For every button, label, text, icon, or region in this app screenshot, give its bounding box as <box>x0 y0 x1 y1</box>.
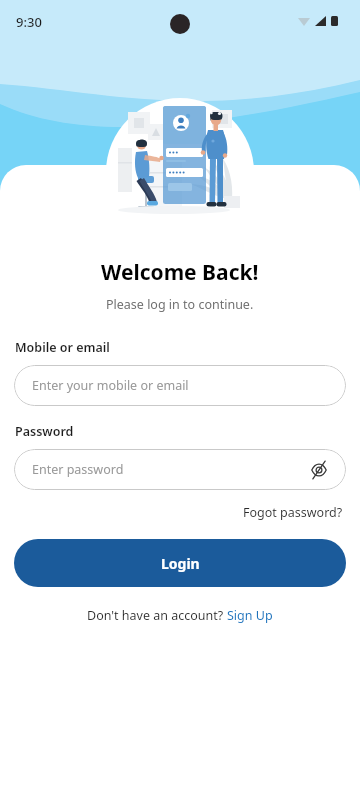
staticText: Fogot password? <box>243 504 343 521</box>
staticText: Enter your mobile or email <box>32 377 189 394</box>
staticText: Please log in to continue. <box>106 296 254 313</box>
staticText: Don't have an account? <box>87 607 227 624</box>
staticText: 9:30 <box>16 13 42 31</box>
button[interactable]: Login <box>14 539 346 587</box>
staticText: Password <box>15 423 74 440</box>
button[interactable]: Show password <box>308 459 330 481</box>
staticText: Welcome Back! <box>101 258 259 287</box>
staticText: Login <box>161 554 200 573</box>
button[interactable]: Enter your mobile or email <box>14 365 346 406</box>
button[interactable]: Sign Up <box>227 607 273 624</box>
button[interactable]: Fogot password? <box>241 502 345 523</box>
staticText: Enter password <box>32 461 124 478</box>
staticText: Sign Up <box>227 607 273 624</box>
staticText: Mobile or email <box>15 339 110 356</box>
button[interactable]: Enter password <box>14 449 346 490</box>
